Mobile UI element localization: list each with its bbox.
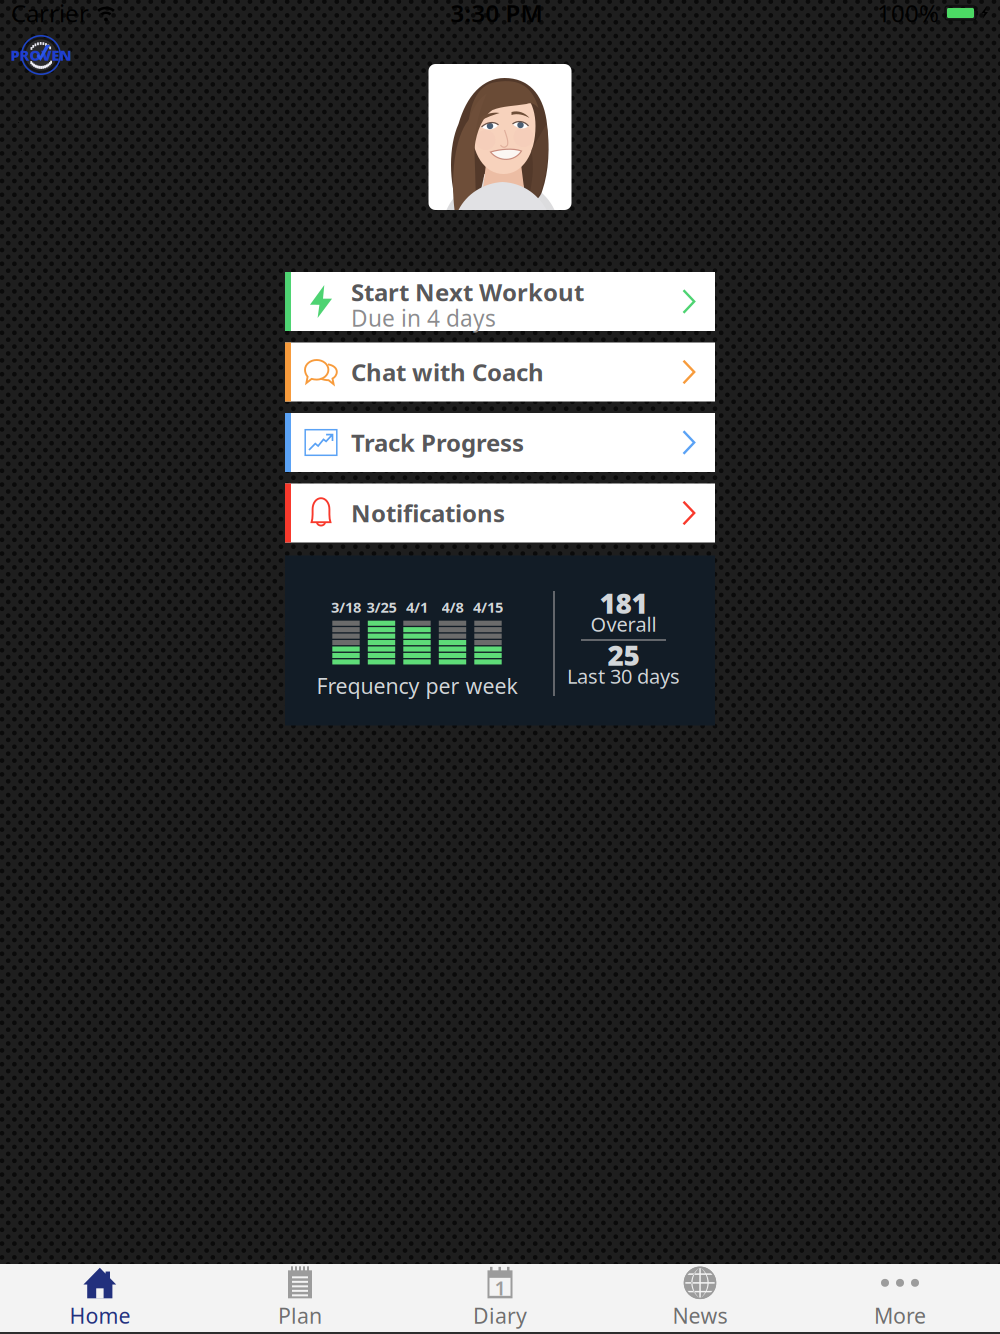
- staticText: 4/1: [406, 597, 428, 617]
- button[interactable]: 1: [400, 1264, 600, 1332]
- staticText: Home: [69, 1301, 130, 1330]
- button[interactable]: Plan: [200, 1264, 400, 1332]
- staticText: Plan: [278, 1301, 322, 1330]
- staticText: Chat with Coach: [351, 356, 544, 388]
- staticText: 3:30 PM: [450, 0, 542, 29]
- staticText: Overall: [590, 611, 656, 637]
- staticText: News: [672, 1301, 727, 1330]
- staticText: 3/18: [331, 597, 361, 617]
- button[interactable]: News: [600, 1264, 800, 1332]
- staticText: 100%: [877, 0, 939, 29]
- staticText: 1: [494, 1275, 505, 1301]
- button[interactable]: Home: [0, 1264, 200, 1332]
- button[interactable]: More: [800, 1264, 1000, 1332]
- staticText: Diary: [473, 1301, 527, 1330]
- button[interactable]: Chat with Coach: [285, 342, 715, 401]
- staticText: 4/8: [441, 597, 463, 617]
- staticText: More: [874, 1301, 926, 1330]
- staticText: Frequency per week: [316, 671, 517, 700]
- staticText: Start Next Workout: [351, 276, 584, 308]
- staticText: 3/25: [366, 597, 396, 617]
- staticText: Carrier: [11, 0, 89, 29]
- staticText: 25: [607, 636, 639, 674]
- staticText: PROVEN: [10, 45, 71, 65]
- button[interactable]: Notifications: [285, 483, 715, 542]
- staticText: Notifications: [351, 497, 505, 529]
- staticText: 181: [599, 584, 647, 622]
- staticText: 4/15: [473, 597, 503, 617]
- staticText: Track Progress: [351, 427, 524, 458]
- staticText: Due in 4 days: [351, 303, 496, 333]
- staticText: Last 30 days: [567, 663, 680, 689]
- button[interactable]: Track Progress: [285, 413, 715, 472]
- button[interactable]: Start Next Workout: [285, 272, 715, 331]
